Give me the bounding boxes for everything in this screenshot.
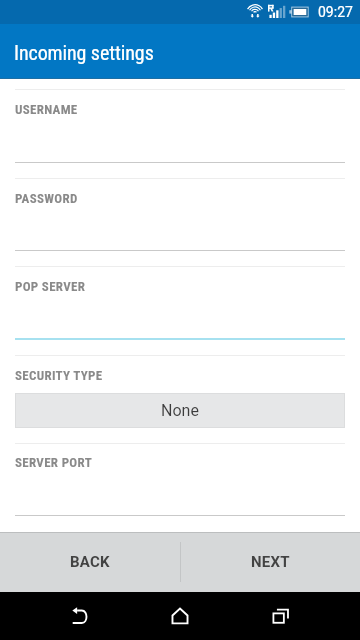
button[interactable] — [15, 266, 345, 340]
staticText: SECURITY TYPE — [15, 368, 103, 383]
button[interactable] — [15, 89, 345, 164]
button[interactable]: Home — [157, 592, 203, 640]
button[interactable]: Recent apps — [257, 592, 303, 640]
button[interactable] — [15, 178, 345, 252]
staticText: 09:27 — [318, 4, 353, 20]
button[interactable]: None — [16, 394, 344, 427]
button[interactable] — [15, 443, 345, 517]
button[interactable]: BACK — [0, 532, 180, 592]
button[interactable]: NEXT — [180, 532, 360, 592]
button[interactable]: SECURITY TYPE — [15, 368, 103, 383]
staticText: Incoming settings — [14, 41, 154, 64]
staticText: None — [161, 401, 199, 420]
button[interactable]: Back — [57, 592, 103, 640]
staticText: POP SERVER — [15, 279, 86, 294]
staticText: USERNAME — [15, 102, 78, 117]
staticText: PASSWORD — [15, 191, 78, 206]
staticText: BACK — [70, 553, 110, 571]
button[interactable]: Incoming settings — [0, 24, 360, 79]
staticText: SERVER PORT — [15, 455, 92, 470]
staticText: NEXT — [251, 553, 290, 571]
